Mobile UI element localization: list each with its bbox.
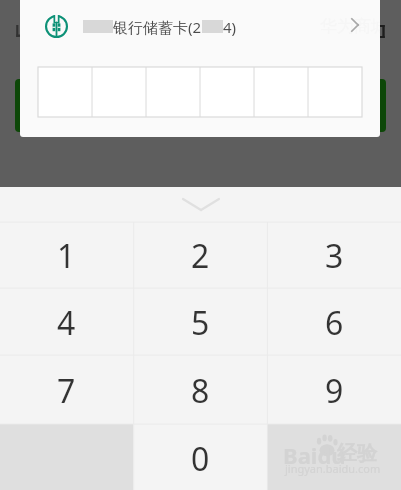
button[interactable]: Bank logo: [20, 2, 380, 48]
staticText: 华为商城: [320, 16, 380, 37]
staticText: 经验: [337, 441, 377, 466]
staticText: 7: [57, 369, 76, 413]
staticText: 4): [223, 17, 237, 37]
button[interactable]: 0: [133, 424, 267, 490]
staticText: 0: [191, 437, 210, 481]
button[interactable]: Delete: [267, 424, 401, 490]
staticText: 2: [191, 234, 210, 278]
button[interactable]: Hide keyboard: [161, 187, 241, 222]
button[interactable]: 5: [133, 288, 267, 355]
staticText: 5: [191, 301, 210, 345]
button[interactable]: 6: [267, 288, 401, 355]
button[interactable]: 8: [133, 355, 267, 424]
button[interactable]: 7: [0, 355, 133, 424]
staticText: jingyan.baidu.com: [285, 461, 381, 476]
staticText: 8: [191, 369, 210, 413]
button[interactable]: 9: [267, 355, 401, 424]
button[interactable]: 4: [0, 288, 133, 355]
other: Bank logo: [45, 15, 68, 38]
staticText: 4: [57, 301, 76, 345]
staticText: Baidu: [283, 440, 346, 470]
staticText: 1: [57, 234, 76, 278]
staticText: 银行储蓄卡(2: [113, 17, 202, 37]
button[interactable]: 1: [0, 222, 133, 288]
staticText: 9: [325, 369, 344, 413]
button[interactable]: 3: [267, 222, 401, 288]
staticText: 6: [325, 301, 344, 345]
button[interactable]: [15, 79, 386, 132]
button[interactable]: 2: [133, 222, 267, 288]
staticText: 3: [325, 234, 344, 278]
